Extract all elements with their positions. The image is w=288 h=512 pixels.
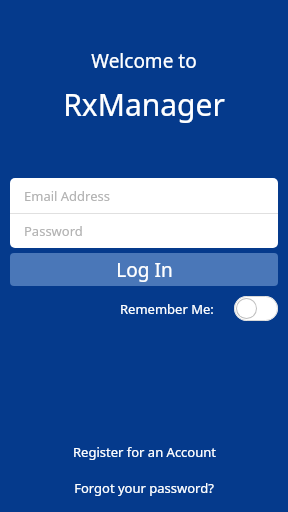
button[interactable]: Log In [10, 253, 278, 286]
button[interactable]: Email Address [10, 178, 278, 213]
button[interactable]: Forgot your password? [66, 476, 222, 500]
staticText: RxManager [63, 84, 225, 125]
button[interactable]: Remember Me toggle, off [234, 296, 278, 321]
staticText: Remember Me: [120, 300, 214, 318]
staticText: Email Address [24, 187, 110, 205]
staticText: Log In [116, 257, 173, 283]
button[interactable]: Password [10, 214, 278, 248]
staticText: Welcome to [91, 48, 197, 74]
staticText: Password [24, 222, 83, 240]
button[interactable]: Register for an Account [65, 440, 224, 464]
staticText: Forgot your password? [74, 479, 214, 497]
staticText: Register for an Account [73, 443, 216, 461]
